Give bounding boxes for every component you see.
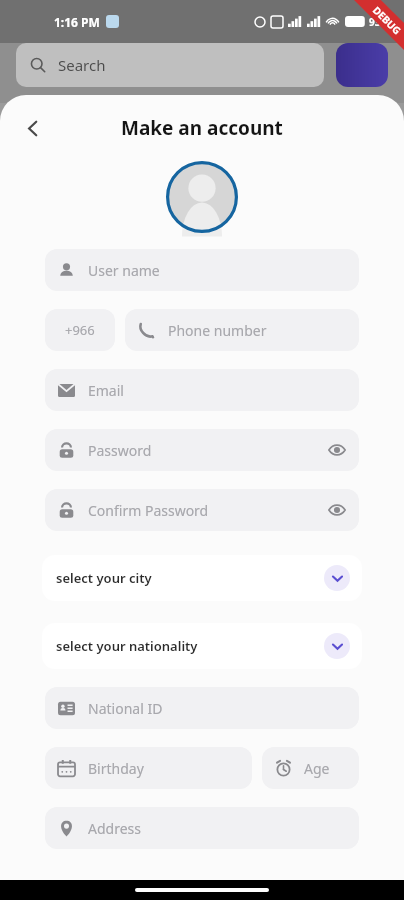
staticText: User name: [88, 261, 160, 280]
staticText: Phone number: [168, 321, 267, 340]
staticText: Make an account: [121, 115, 283, 141]
button[interactable]: National ID: [45, 687, 359, 729]
button[interactable]: Age: [262, 747, 359, 789]
staticText: +966: [65, 321, 95, 339]
staticText: National ID: [88, 699, 163, 718]
button[interactable]: select your city: [42, 555, 362, 601]
button[interactable]: select your nationality: [42, 623, 362, 669]
button[interactable]: Email: [45, 369, 359, 411]
staticText: Birthday: [88, 759, 144, 778]
button[interactable]: Phone number: [125, 309, 359, 351]
staticText: Confirm Password: [88, 501, 209, 520]
staticText: 1:16 PM: [54, 14, 100, 30]
button[interactable]: Password: [45, 429, 359, 471]
button[interactable]: +966: [45, 309, 115, 351]
staticText: Email: [88, 381, 124, 400]
staticText: DEBUG: [370, 3, 404, 37]
button[interactable]: Address: [45, 807, 359, 849]
staticText: 93%: [369, 15, 390, 29]
button[interactable]: Back: [12, 108, 52, 148]
button[interactable]: Confirm Password: [45, 489, 359, 531]
button[interactable]: Birthday: [45, 747, 252, 789]
staticText: select your nationality: [56, 637, 198, 655]
staticText: select your city: [56, 569, 152, 587]
staticText: Password: [88, 441, 152, 460]
staticText: Address: [88, 819, 141, 838]
staticText: Search: [58, 55, 106, 75]
button[interactable]: User name: [45, 249, 359, 291]
staticText: Age: [304, 759, 330, 778]
